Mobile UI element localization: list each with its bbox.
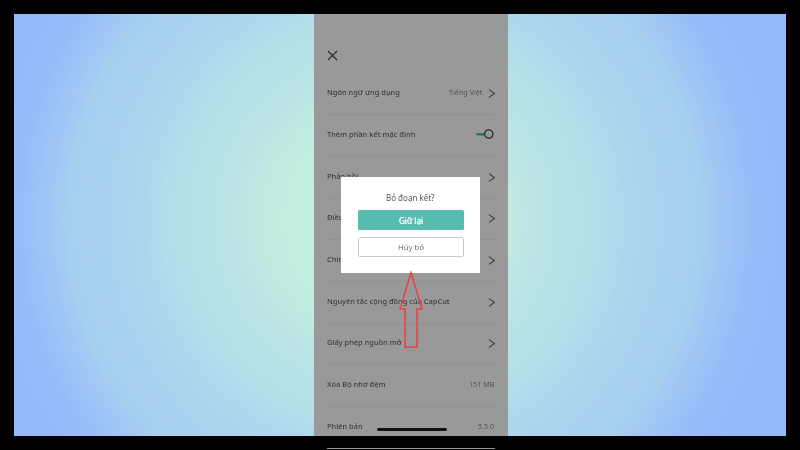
staticText: Ngôn ngữ ứng dụng <box>327 87 400 97</box>
staticText: Phản hồi <box>327 171 359 181</box>
staticText: Giữ lại <box>399 215 423 226</box>
staticText: Bỏ đoạn kết? <box>386 192 435 203</box>
staticText: Tiếng Việt <box>449 87 483 97</box>
button[interactable]: Phiên bản <box>314 405 508 447</box>
button[interactable]: Ngôn ngữ ứng dụng <box>314 71 508 113</box>
button[interactable]: Chính sách quyền riêng tư <box>314 238 508 280</box>
button[interactable]: Close <box>320 43 344 67</box>
button[interactable]: Điều khoản dịch vụ <box>314 196 508 238</box>
staticText: Nguyên tắc cộng đồng của CapCut <box>327 296 450 306</box>
button[interactable]: Giấy phép nguồn mở <box>314 321 508 363</box>
staticText: Xóa Bộ nhớ đệm <box>327 379 386 389</box>
staticText: Hủy bỏ <box>398 242 425 253</box>
staticText: 5.5.0 <box>478 421 495 431</box>
staticText: Giấy phép nguồn mở <box>327 337 402 347</box>
button[interactable]: Hủy bỏ <box>358 237 464 257</box>
staticText: Phiên bản <box>327 421 363 431</box>
staticText: Điều khoản dịch vụ <box>327 212 395 222</box>
button[interactable]: Xóa Bộ nhớ đệm <box>314 363 508 405</box>
button[interactable]: Nguyên tắc cộng đồng của CapCut <box>314 280 508 322</box>
staticText: Chính sách quyền riêng tư <box>327 254 421 264</box>
staticText: Thêm phần kết mặc định <box>327 129 416 139</box>
button[interactable]: Thêm phần kết mặc định <box>314 113 508 155</box>
staticText: 151 MB <box>469 379 495 389</box>
button[interactable]: Phản hồi <box>314 155 508 197</box>
button[interactable]: Giữ lại <box>358 210 464 230</box>
